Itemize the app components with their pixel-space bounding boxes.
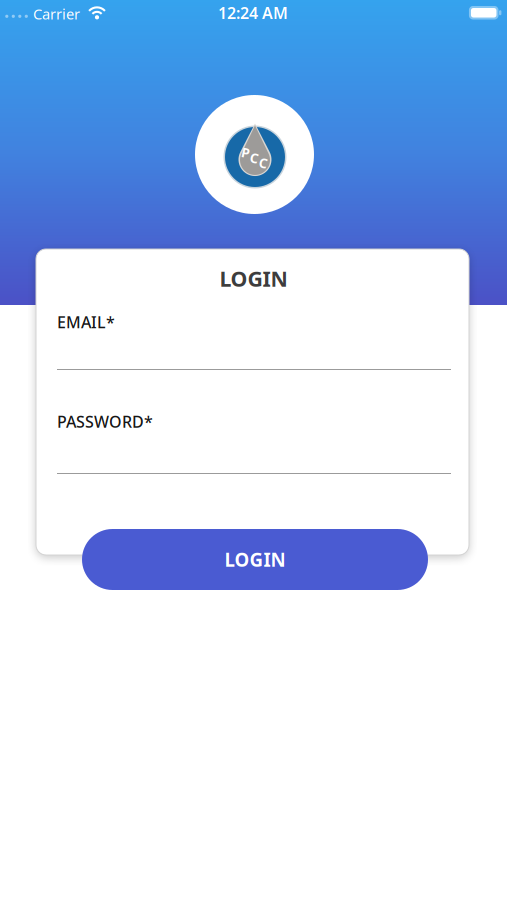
staticText: PASSWORD* (57, 411, 153, 432)
button[interactable]: Email (57, 333, 451, 370)
staticText: C (259, 154, 268, 172)
staticText: LOGIN (224, 547, 285, 572)
staticText: 12:24 AM (218, 2, 288, 23)
staticText: C (250, 149, 259, 167)
staticText: P (241, 144, 249, 161)
staticText: EMAIL* (57, 311, 115, 333)
staticText: Carrier (33, 4, 80, 24)
button[interactable]: Password (57, 437, 451, 474)
button[interactable]: LOGIN (82, 529, 428, 590)
staticText: LOGIN (219, 264, 287, 293)
